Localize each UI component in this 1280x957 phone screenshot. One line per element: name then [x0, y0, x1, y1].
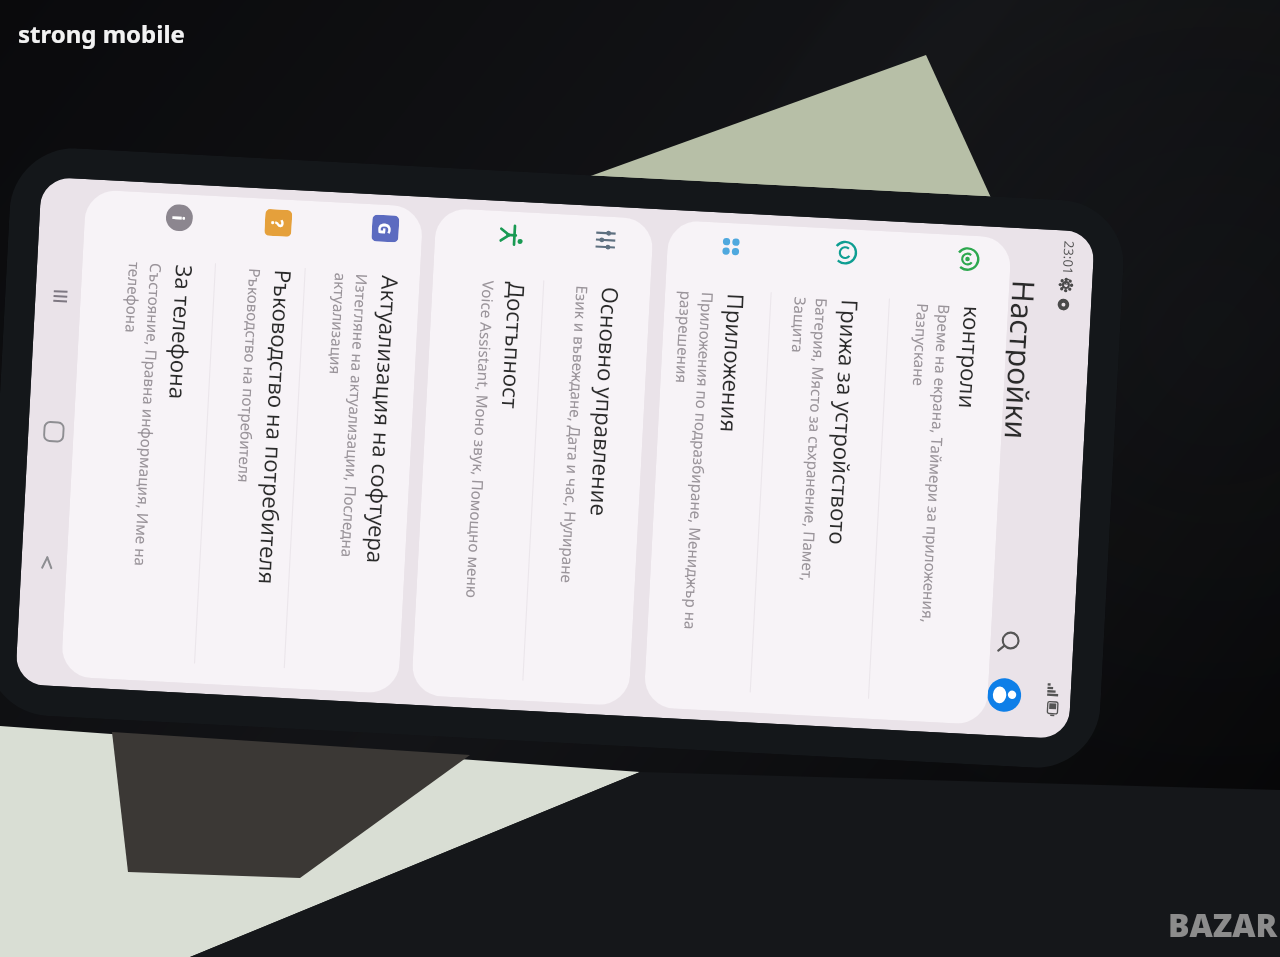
staticText: Език и въвеждане, Дата и час, Нулиране [556, 285, 593, 584]
staticText: ? [267, 219, 290, 228]
button[interactable]: Recents [34, 266, 91, 326]
button[interactable] [453, 210, 542, 700]
staticText: strong mobile [18, 17, 185, 50]
staticText: Разпускане [908, 303, 934, 387]
button[interactable] [547, 215, 636, 705]
staticText: разрешения [671, 290, 697, 384]
staticText: Грижа за устройството [822, 299, 865, 546]
button[interactable] [654, 220, 761, 712]
button[interactable] [102, 191, 209, 683]
staticText: Настройки [995, 279, 1045, 441]
staticText: Достъпност [495, 281, 532, 410]
staticText: За телефона [162, 264, 200, 400]
button[interactable] [308, 202, 415, 694]
staticText: Приложения по подразбиране, Мениджър на [680, 291, 719, 630]
button[interactable]: Back [20, 533, 77, 593]
button[interactable]: Home [27, 402, 84, 462]
staticText: контроли [952, 305, 988, 409]
staticText: G [374, 222, 397, 236]
staticText: Защита [787, 296, 812, 354]
staticText: Актуализация на софтуера [360, 275, 406, 565]
staticText: Приложения [714, 293, 751, 434]
staticText: Voice Assistant, Моно звук, Помощно меню [461, 280, 499, 599]
staticText: актуализация [325, 272, 352, 375]
staticText: 23:01 ч. [1059, 240, 1079, 290]
staticText: BAZAR [1168, 903, 1278, 947]
staticText: Време на екрана, Таймери за приложения, [917, 304, 955, 624]
button[interactable]: Search [986, 620, 1030, 665]
staticText: Батерия, Място за съхранение, Памет, [797, 297, 833, 583]
staticText: Състояние, Правна информация, Име на [130, 263, 167, 567]
staticText: Изтегляне на актуализации, Последна [337, 273, 373, 559]
staticText: Ръководство на потребителя [252, 269, 298, 586]
button[interactable] [890, 233, 997, 724]
staticText: телефона [121, 261, 146, 334]
staticText: Основно управление [583, 286, 626, 517]
button[interactable] [768, 226, 875, 718]
staticText: Ръководство на потребителя [233, 268, 266, 484]
button[interactable]: Account [982, 673, 1027, 717]
staticText: i [168, 215, 191, 222]
button[interactable] [220, 198, 308, 688]
